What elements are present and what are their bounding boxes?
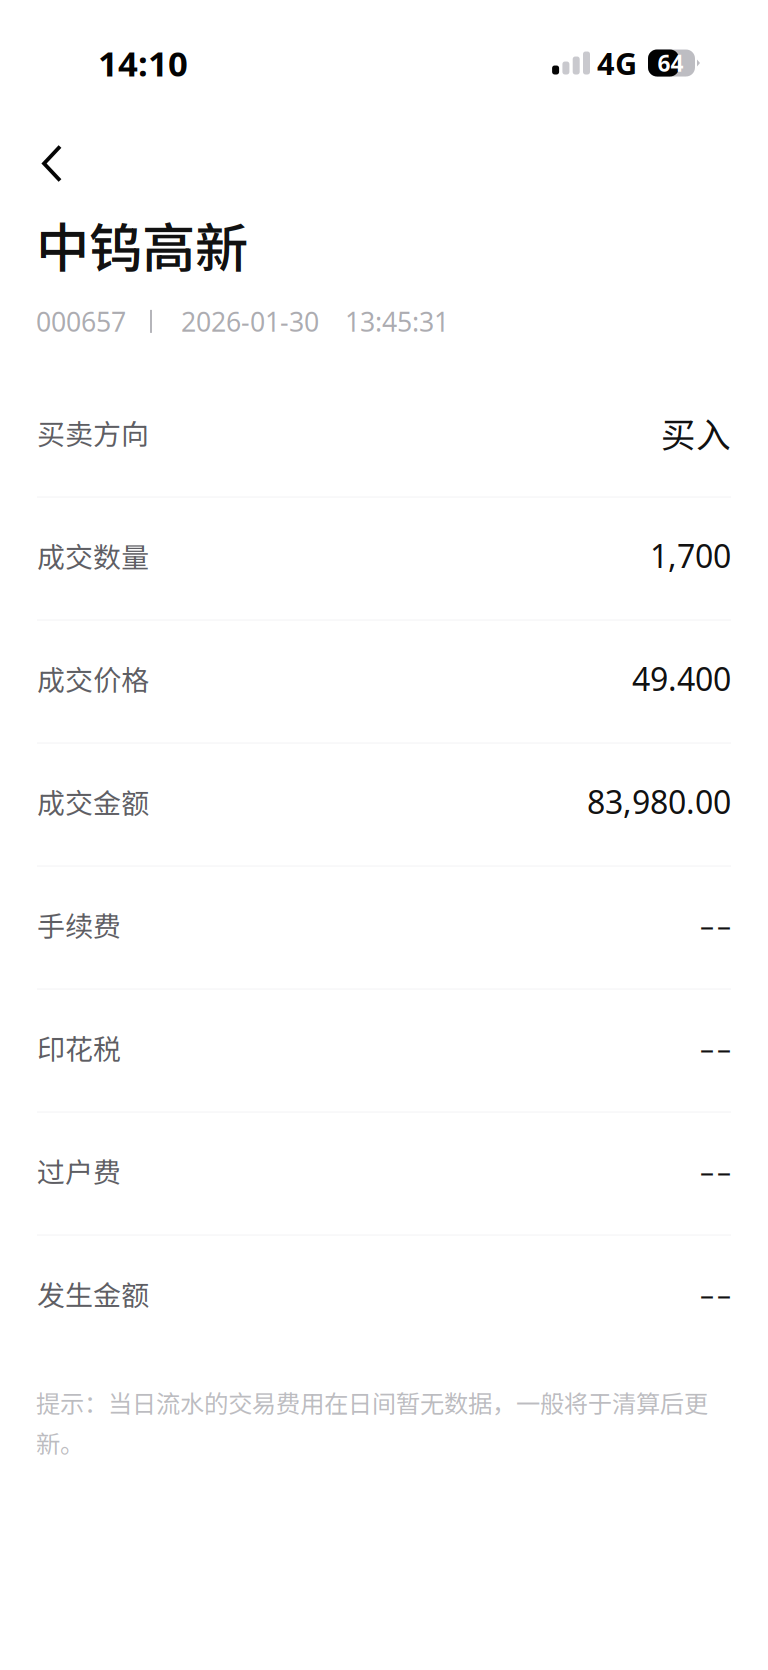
staticText: 49.400: [632, 657, 731, 700]
staticText: 4G: [597, 42, 637, 84]
staticText: 手续费: [37, 904, 121, 945]
staticText: 83,980.00: [587, 780, 731, 823]
staticText: 成交价格: [37, 658, 149, 699]
staticText: 买卖方向: [37, 412, 149, 453]
staticText: 成交金额: [37, 781, 149, 822]
button[interactable]: Back: [0, 103, 88, 196]
staticText: 发生金额: [37, 1273, 149, 1314]
staticText: 64: [657, 48, 683, 78]
staticText: 成交数量: [37, 535, 149, 576]
staticText: 提示：当日流水的交易费用在日间暂无数据，一般将于清算后更新。: [36, 1384, 708, 1460]
staticText: 000657: [36, 303, 126, 339]
staticText: 买入: [661, 407, 731, 458]
staticText: 过户费: [37, 1150, 121, 1191]
staticText: 13:45:31: [345, 303, 449, 339]
staticText: – –: [700, 1028, 731, 1067]
staticText: – –: [700, 1151, 731, 1190]
staticText: 中钨高新: [36, 206, 248, 283]
staticText: – –: [700, 1274, 731, 1313]
staticText: 1,700: [650, 534, 731, 577]
staticText: – –: [700, 905, 731, 944]
staticText: 14:10: [98, 39, 188, 87]
staticText: 2026-01-30: [181, 303, 319, 339]
staticText: 印花税: [37, 1027, 121, 1068]
